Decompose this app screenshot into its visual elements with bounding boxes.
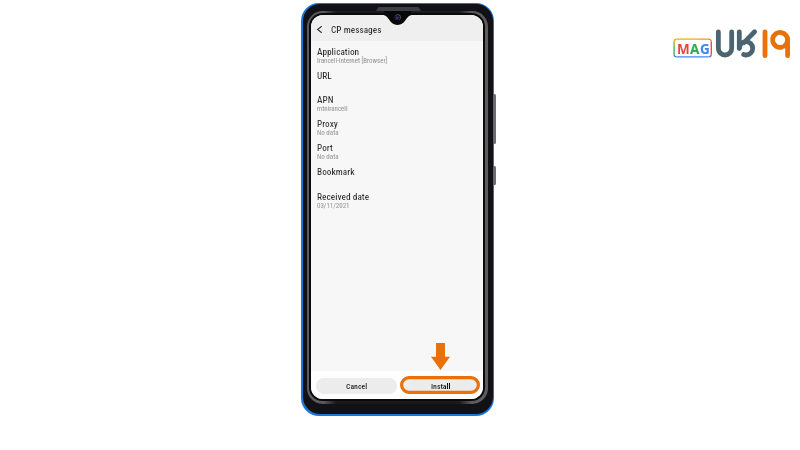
button[interactable]: Back — [312, 22, 326, 36]
staticText: A — [690, 40, 700, 56]
staticText: Install — [431, 382, 451, 391]
staticText: Irancell-Internet [Browser] — [317, 57, 388, 65]
button[interactable]: Received date — [311, 188, 483, 212]
staticText: CP messages — [331, 24, 382, 35]
staticText: Port — [317, 142, 333, 153]
staticText: 03/11/2021 — [317, 202, 350, 210]
button[interactable]: Install — [402, 378, 479, 394]
button[interactable]: APN — [311, 91, 483, 115]
staticText: Bookmark — [317, 166, 355, 177]
button[interactable]: Port — [311, 139, 483, 163]
staticText: Cancel — [346, 382, 368, 391]
staticText: G — [700, 40, 710, 56]
button[interactable]: Application — [311, 43, 483, 67]
button[interactable]: Cancel — [316, 378, 397, 394]
staticText: Application — [317, 46, 360, 57]
button[interactable]: Proxy — [311, 115, 483, 139]
staticText: Proxy — [317, 118, 338, 129]
staticText: No data — [317, 153, 339, 161]
staticText: APN — [317, 94, 334, 105]
staticText: M — [677, 40, 690, 56]
button[interactable]: URL — [311, 67, 483, 91]
staticText: No data — [317, 129, 339, 137]
staticText: Received date — [317, 191, 370, 202]
staticText: URL — [317, 70, 332, 81]
button[interactable]: Bookmark — [311, 163, 483, 187]
staticText: mtnirancell — [317, 105, 348, 113]
